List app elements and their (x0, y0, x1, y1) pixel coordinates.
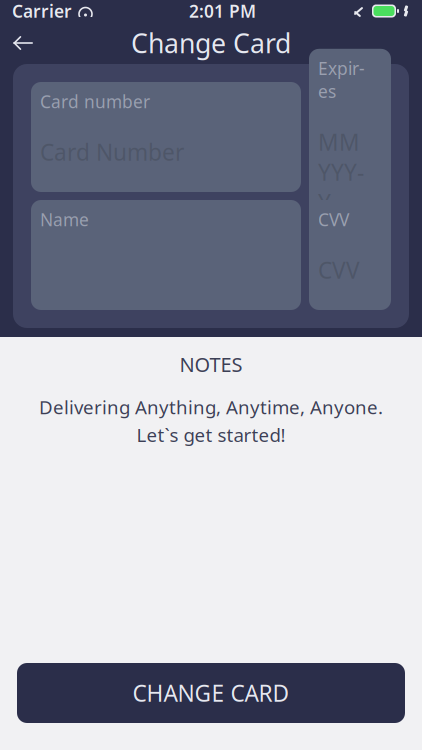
staticText: CVV (318, 208, 349, 231)
staticText: CVV (318, 255, 360, 285)
staticText: Delivering Anything, Anytime, Anyone. (39, 395, 383, 419)
staticText: Expires (318, 57, 365, 103)
button[interactable]: Back (0, 23, 46, 63)
staticText: Carrier (12, 0, 72, 22)
staticText: NOTES (179, 351, 242, 378)
staticText: 2:01 PM (189, 0, 256, 22)
staticText: CHANGE CARD (132, 678, 289, 708)
staticText: Let`s get started! (136, 422, 285, 447)
staticText: Name (40, 208, 89, 231)
staticText: Change Card (131, 25, 291, 61)
staticText: Card number (40, 90, 150, 113)
button[interactable]: CHANGE CARD (17, 663, 405, 723)
staticText: MM YYYY (318, 127, 364, 217)
staticText: Card Number (40, 137, 184, 167)
